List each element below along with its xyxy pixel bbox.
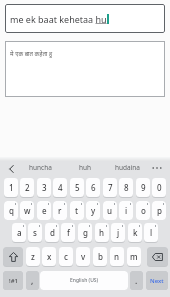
staticText: q [9,205,14,216]
button[interactable]: , [26,271,39,290]
button[interactable]: 6 [86,178,100,197]
staticText: huncha [29,163,52,172]
staticText: , [31,275,34,287]
staticText: n [114,251,120,262]
staticText: !#1 [9,277,18,285]
button[interactable]: 3 [37,178,51,197]
staticText: r [58,205,62,216]
button[interactable]: 5 [70,178,84,197]
button[interactable]: c [59,247,73,266]
staticText: 3 [42,182,47,193]
staticText: me ek baat kehetaa hu [10,13,107,25]
button[interactable] [148,157,166,178]
staticText: c [64,251,68,262]
staticText: o [141,205,146,216]
button[interactable]: x [42,247,56,266]
button[interactable]: 8 [119,178,133,197]
button[interactable]: z [26,247,40,266]
staticText: s [33,227,37,238]
staticText: l [150,227,153,238]
button[interactable]: v [76,247,90,266]
staticText: g [83,227,88,238]
button[interactable]: b [93,247,107,266]
staticText: t [75,205,79,216]
button[interactable]: . [130,271,143,290]
staticText: 9 [141,182,146,193]
staticText: x [47,251,52,262]
staticText: p [157,205,162,216]
button[interactable]: q [4,201,18,220]
button[interactable]: 9 [136,178,150,197]
button[interactable]: i [119,201,133,220]
button[interactable] [3,247,23,266]
staticText: 6 [91,182,96,193]
staticText: 5 [75,182,80,193]
button[interactable] [3,158,19,179]
staticText: h [99,227,105,238]
button[interactable]: a [12,223,26,242]
button[interactable]: !#1 [3,271,23,290]
button[interactable]: hudaina [110,157,146,178]
button[interactable]: f [61,223,75,242]
button[interactable]: l [144,223,158,242]
button[interactable]: m [127,247,141,266]
button[interactable]: y [86,201,100,220]
button[interactable]: g [78,223,92,242]
button[interactable]: h [95,223,109,242]
staticText: e [42,205,47,216]
button[interactable]: n [110,247,124,266]
staticText: 2 [25,182,30,193]
staticText: w [24,205,31,216]
staticText: z [31,251,35,262]
staticText: 1 [9,182,14,193]
staticText: d [50,227,55,238]
button[interactable]: huncha [22,157,58,178]
staticText: u [107,205,113,216]
button[interactable]: 7 [103,178,117,197]
staticText: मे एक बात कहेता हु [10,50,53,58]
staticText: hudaina [115,163,141,172]
button[interactable]: Next [146,271,168,290]
staticText: j [117,227,120,238]
staticText: Next [150,277,164,285]
staticText: 7 [108,182,113,193]
staticText: b [98,251,103,262]
staticText: m [130,251,138,262]
staticText: 0 [157,182,162,193]
staticText: 4 [58,182,63,193]
button[interactable]: me ek baat kehetaa hu [5,4,165,33]
staticText: . [135,275,138,287]
button[interactable]: 0 [152,178,166,197]
staticText: English (US) [70,277,99,284]
staticText: i [125,205,128,216]
button[interactable]: t [70,201,84,220]
staticText: k [133,227,138,238]
button[interactable]: u [103,201,117,220]
button[interactable]: d [45,223,59,242]
button[interactable]: huh [67,157,103,178]
button[interactable]: w [20,201,34,220]
button[interactable]: s [28,223,42,242]
button[interactable]: k [128,223,142,242]
button[interactable]: r [53,201,67,220]
button[interactable]: English (US) [40,271,128,290]
staticText: huh [79,163,92,172]
button[interactable]: p [152,201,166,220]
button[interactable]: मे एक बात कहेता हु [5,41,165,97]
button[interactable]: 2 [20,178,34,197]
staticText: v [81,251,86,262]
button[interactable] [147,247,168,266]
button[interactable]: o [136,201,150,220]
button[interactable]: 4 [53,178,67,197]
staticText: y [91,205,96,216]
button[interactable]: 1 [4,178,18,197]
staticText: f [67,227,70,238]
staticText: 8 [124,182,129,193]
staticText: a [17,227,22,238]
button[interactable]: j [111,223,125,242]
button[interactable]: e [37,201,51,220]
